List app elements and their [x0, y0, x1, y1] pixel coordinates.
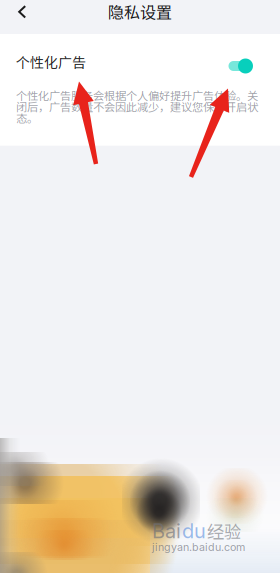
staticText: Bai [152, 519, 181, 543]
staticText: du [182, 519, 206, 543]
staticText: jingyan.baidu.com [152, 540, 245, 553]
button[interactable]: 个性化广告 [0, 45, 280, 79]
staticText: 个性化广告服务会根据个人偏好提升广告体验。关闭后，广告数量不会因此减少，建议您保… [16, 87, 258, 126]
staticText: 隐私设置 [108, 0, 172, 23]
button[interactable]: Back [0, 0, 39, 32]
staticText: 个性化广告 [16, 52, 86, 72]
staticText: 经验 [207, 518, 241, 544]
